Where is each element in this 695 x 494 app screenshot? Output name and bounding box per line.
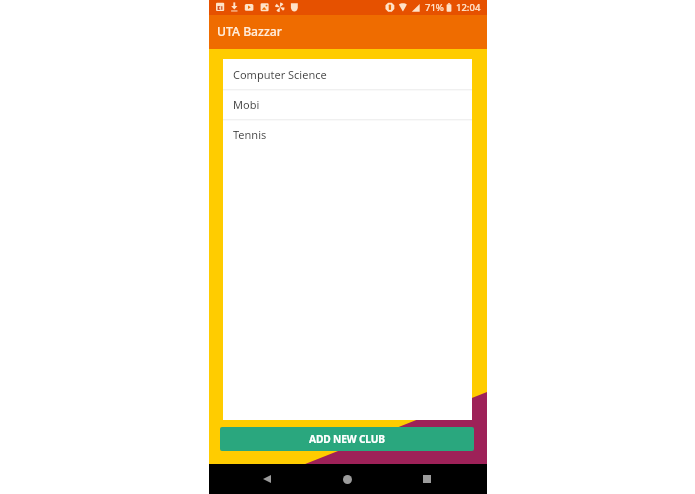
- button[interactable]: Back: [253, 465, 281, 493]
- staticText: Computer Science: [233, 67, 327, 82]
- staticText: 71%: [425, 1, 444, 14]
- staticText: UTA Bazzar: [217, 23, 282, 40]
- button[interactable]: Tennis: [223, 119, 472, 149]
- button[interactable]: Mobi: [223, 89, 472, 119]
- button[interactable]: ADD NEW CLUB: [220, 427, 474, 451]
- staticText: ADD NEW CLUB: [309, 432, 385, 446]
- staticText: Mobi: [233, 97, 260, 112]
- button[interactable]: Home: [333, 465, 361, 493]
- button[interactable]: Recents: [413, 465, 441, 493]
- staticText: 12:04: [456, 1, 481, 14]
- button[interactable]: Computer Science: [223, 59, 472, 89]
- staticText: Tennis: [233, 127, 267, 142]
